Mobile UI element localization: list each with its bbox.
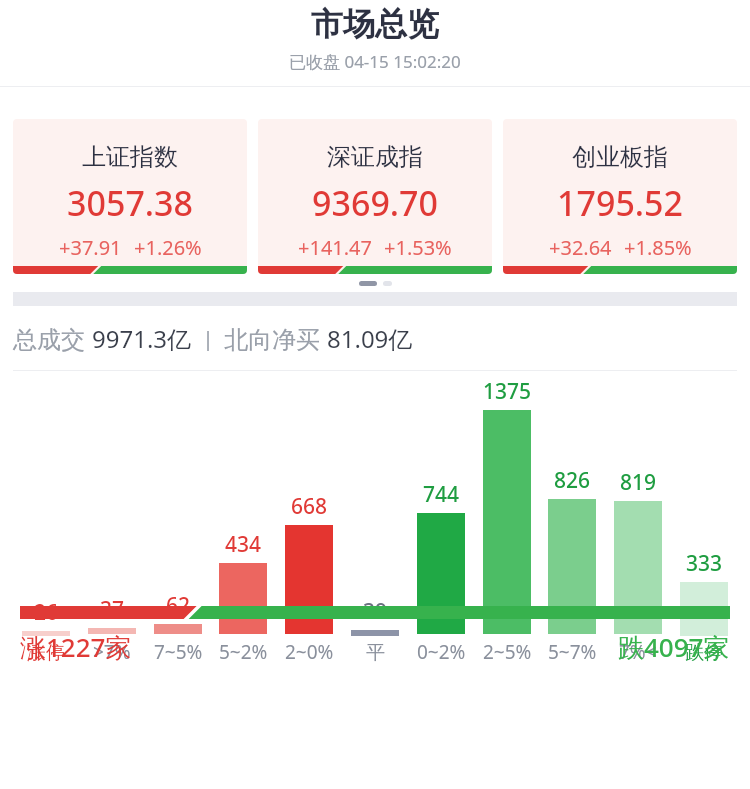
staticText: 744: [423, 480, 460, 509]
staticText: 创业板指: [572, 142, 668, 172]
staticText: |: [192, 325, 224, 352]
staticText: 37: [100, 595, 125, 624]
button[interactable]: 上证指数: [13, 119, 247, 274]
staticText: 涨1227家: [20, 629, 132, 665]
staticText: 26: [34, 598, 59, 627]
staticText: 北向净买: [224, 322, 327, 355]
staticText: 跌4097家: [618, 629, 730, 665]
staticText: +1.53%: [384, 234, 452, 261]
staticText: +32.64: [549, 234, 612, 261]
staticText: 81.09亿: [327, 322, 413, 355]
staticText: 深证成指: [327, 142, 423, 172]
staticText: 跌停: [685, 641, 723, 665]
staticText: 1795.52: [557, 180, 683, 226]
staticText: 涨停: [27, 641, 65, 665]
staticText: 3057.38: [67, 180, 193, 226]
staticText: 9971.3亿: [92, 322, 192, 355]
staticText: 9369.70: [312, 180, 438, 226]
staticText: 总成交: [13, 322, 92, 355]
staticText: +37.91: [59, 234, 122, 261]
staticText: 7%<: [619, 639, 657, 665]
staticText: 62: [166, 591, 191, 620]
staticText: +1.26%: [134, 234, 202, 261]
staticText: +141.47: [298, 234, 372, 261]
staticText: 2~5%: [483, 639, 532, 665]
staticText: >7%: [93, 639, 131, 665]
staticText: 826: [554, 466, 591, 495]
staticText: 39: [363, 597, 388, 626]
staticText: 市场总览: [311, 4, 439, 44]
staticText: 434: [225, 530, 262, 559]
staticText: 5~7%: [548, 639, 597, 665]
button[interactable]: 创业板指: [503, 119, 737, 274]
staticText: 819: [620, 468, 657, 497]
staticText: 上证指数: [82, 142, 178, 172]
staticText: 2~0%: [285, 639, 334, 665]
staticText: 0~2%: [417, 639, 466, 665]
staticText: 已收盘 04-15 15:02:20: [289, 50, 461, 73]
staticText: +1.85%: [624, 234, 692, 261]
staticText: 平: [366, 641, 385, 665]
staticText: 668: [291, 492, 328, 521]
button[interactable]: 深证成指: [258, 119, 492, 274]
staticText: 5~2%: [219, 639, 268, 665]
staticText: 1375: [483, 377, 532, 406]
staticText: 333: [686, 549, 723, 578]
staticText: 7~5%: [154, 639, 203, 665]
